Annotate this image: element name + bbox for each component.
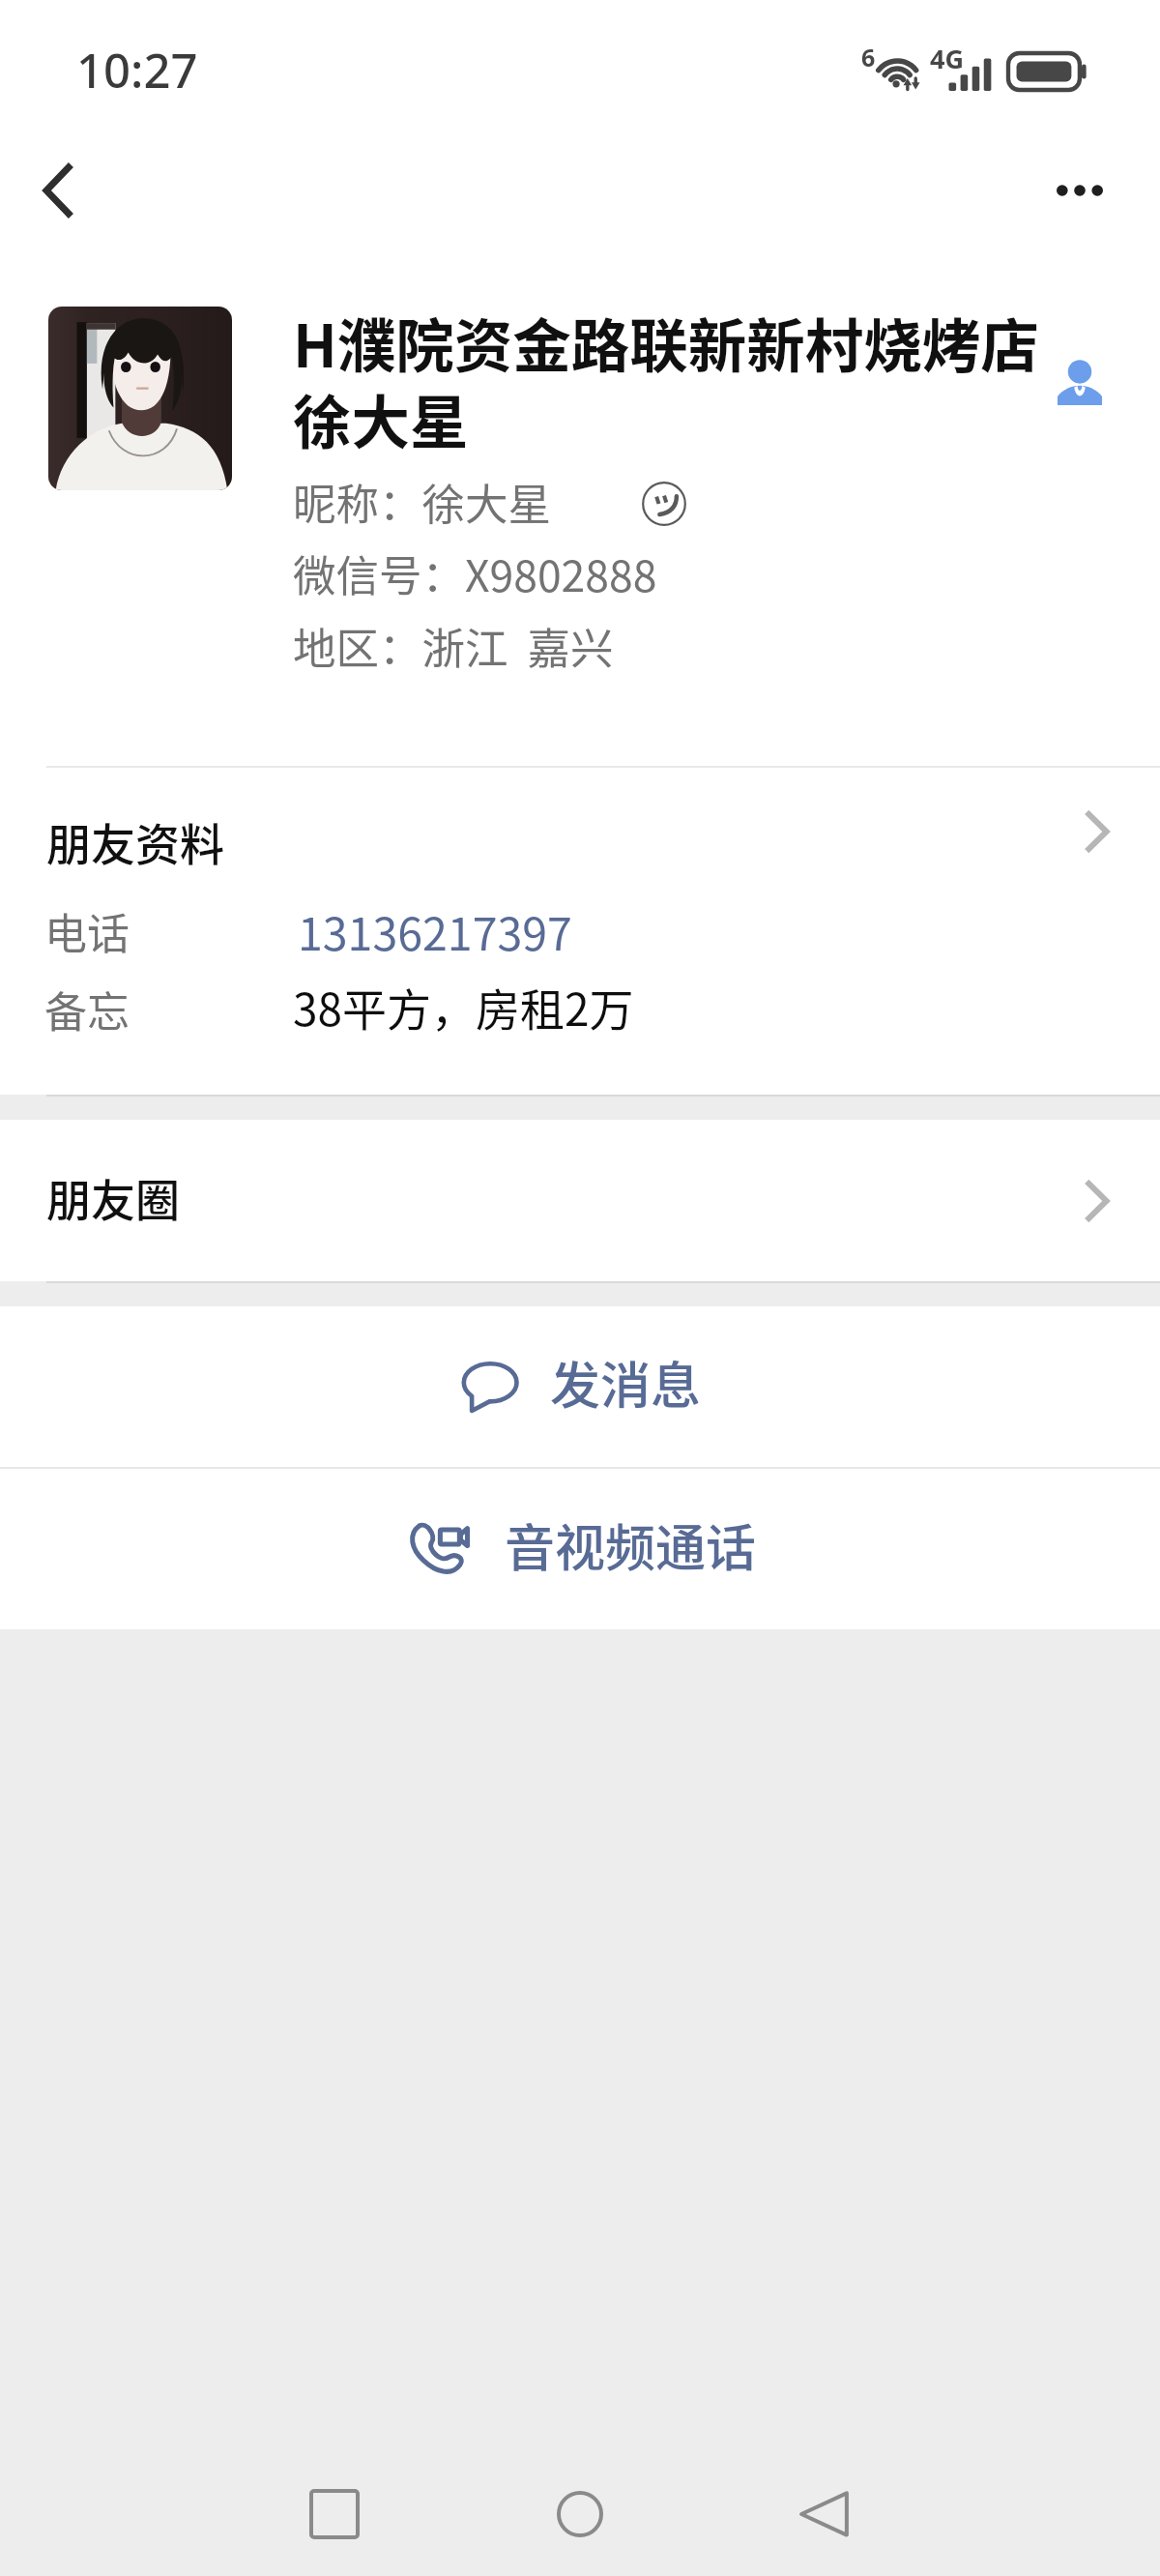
staticText: 电话 [44, 900, 130, 962]
button[interactable]: Back [12, 137, 102, 244]
button[interactable]: More options [1034, 137, 1125, 244]
staticText: 朋友圈 [46, 1165, 180, 1230]
button[interactable]: Back [767, 2456, 883, 2572]
staticText: 音视频通话 [505, 1508, 757, 1581]
staticText: 6 [861, 41, 876, 73]
staticText: 昵称：徐大星 [293, 470, 552, 532]
staticText: 地区：浙江 嘉兴 [293, 614, 614, 676]
staticText: 备忘 [44, 979, 130, 1040]
staticText: 13136217397 [298, 898, 572, 963]
button[interactable]: 朋友资料 [0, 768, 1160, 1095]
button[interactable]: Recents [276, 2456, 392, 2572]
button[interactable]: 发消息 [0, 1306, 1160, 1467]
staticText: 10:27 [76, 38, 198, 102]
staticText: 发消息 [550, 1346, 702, 1419]
staticText: 4G [930, 41, 964, 76]
button[interactable]: 朋友圈 [0, 1120, 1160, 1281]
staticText: H濮院资金路联新新村烧烤店徐大星 [293, 300, 1057, 461]
button[interactable]: Avatar [48, 307, 232, 490]
staticText: 朋友资料 [46, 809, 224, 874]
staticText: 微信号：X9802888 [293, 542, 657, 603]
button[interactable]: 音视频通话 [0, 1469, 1160, 1629]
button[interactable]: Home [522, 2456, 638, 2572]
staticText: 38平方，房租2万 [293, 975, 634, 1039]
